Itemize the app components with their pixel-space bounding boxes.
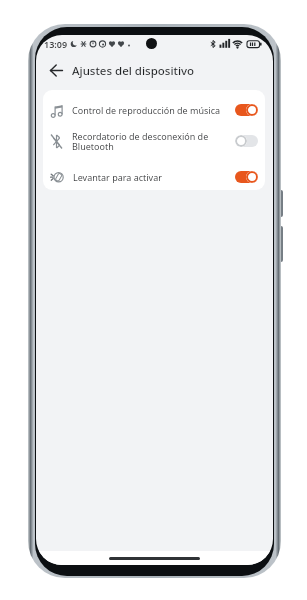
- button[interactable]: [235, 104, 258, 116]
- button[interactable]: [50, 64, 63, 77]
- button[interactable]: [235, 171, 258, 183]
- button[interactable]: Levantar para activar: [43, 163, 265, 190]
- staticText: Recordatorio de desconexión de Bluetooth: [72, 130, 229, 152]
- staticText: Levantar para activar: [73, 171, 235, 183]
- staticText: Control de reproducción de música: [72, 104, 235, 116]
- staticText: Ajustes del dispositivo: [72, 63, 195, 79]
- staticText: 13:09: [44, 38, 68, 50]
- button[interactable]: [235, 135, 258, 147]
- button[interactable]: Control de reproducción de música: [43, 92, 265, 128]
- button[interactable]: Recordatorio de desconexión de Bluetooth: [43, 128, 265, 154]
